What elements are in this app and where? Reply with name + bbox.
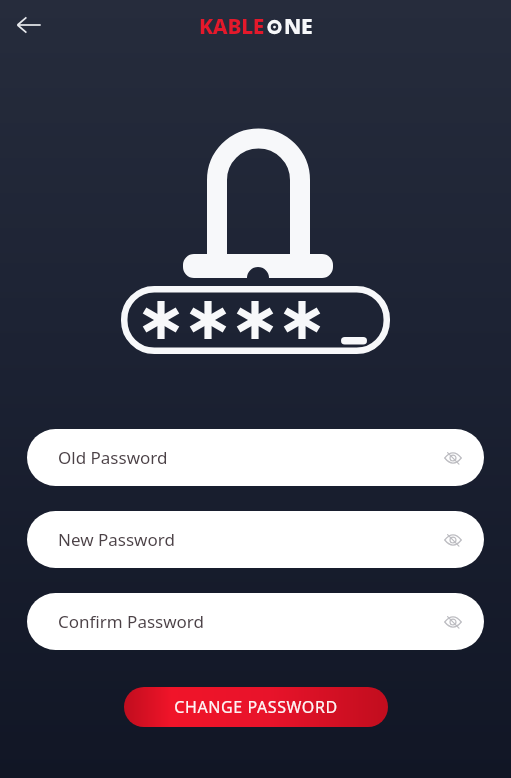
staticText: Confirm Password — [58, 610, 204, 633]
staticText: Old Password — [58, 446, 168, 469]
button[interactable]: Toggle password visibility — [436, 441, 470, 475]
button[interactable]: New Password — [27, 511, 484, 568]
button[interactable]: Toggle password visibility — [436, 605, 470, 639]
staticText: CHANGE PASSWORD — [174, 696, 338, 718]
staticText: KABLE — [199, 12, 265, 41]
button[interactable]: Back — [6, 2, 52, 48]
button[interactable]: Confirm Password — [27, 593, 484, 650]
button[interactable]: Old Password — [27, 429, 484, 486]
staticText: New Password — [58, 528, 175, 551]
staticText: NE — [284, 12, 313, 41]
button[interactable]: CHANGE PASSWORD — [124, 687, 388, 727]
button[interactable]: Toggle password visibility — [436, 523, 470, 557]
